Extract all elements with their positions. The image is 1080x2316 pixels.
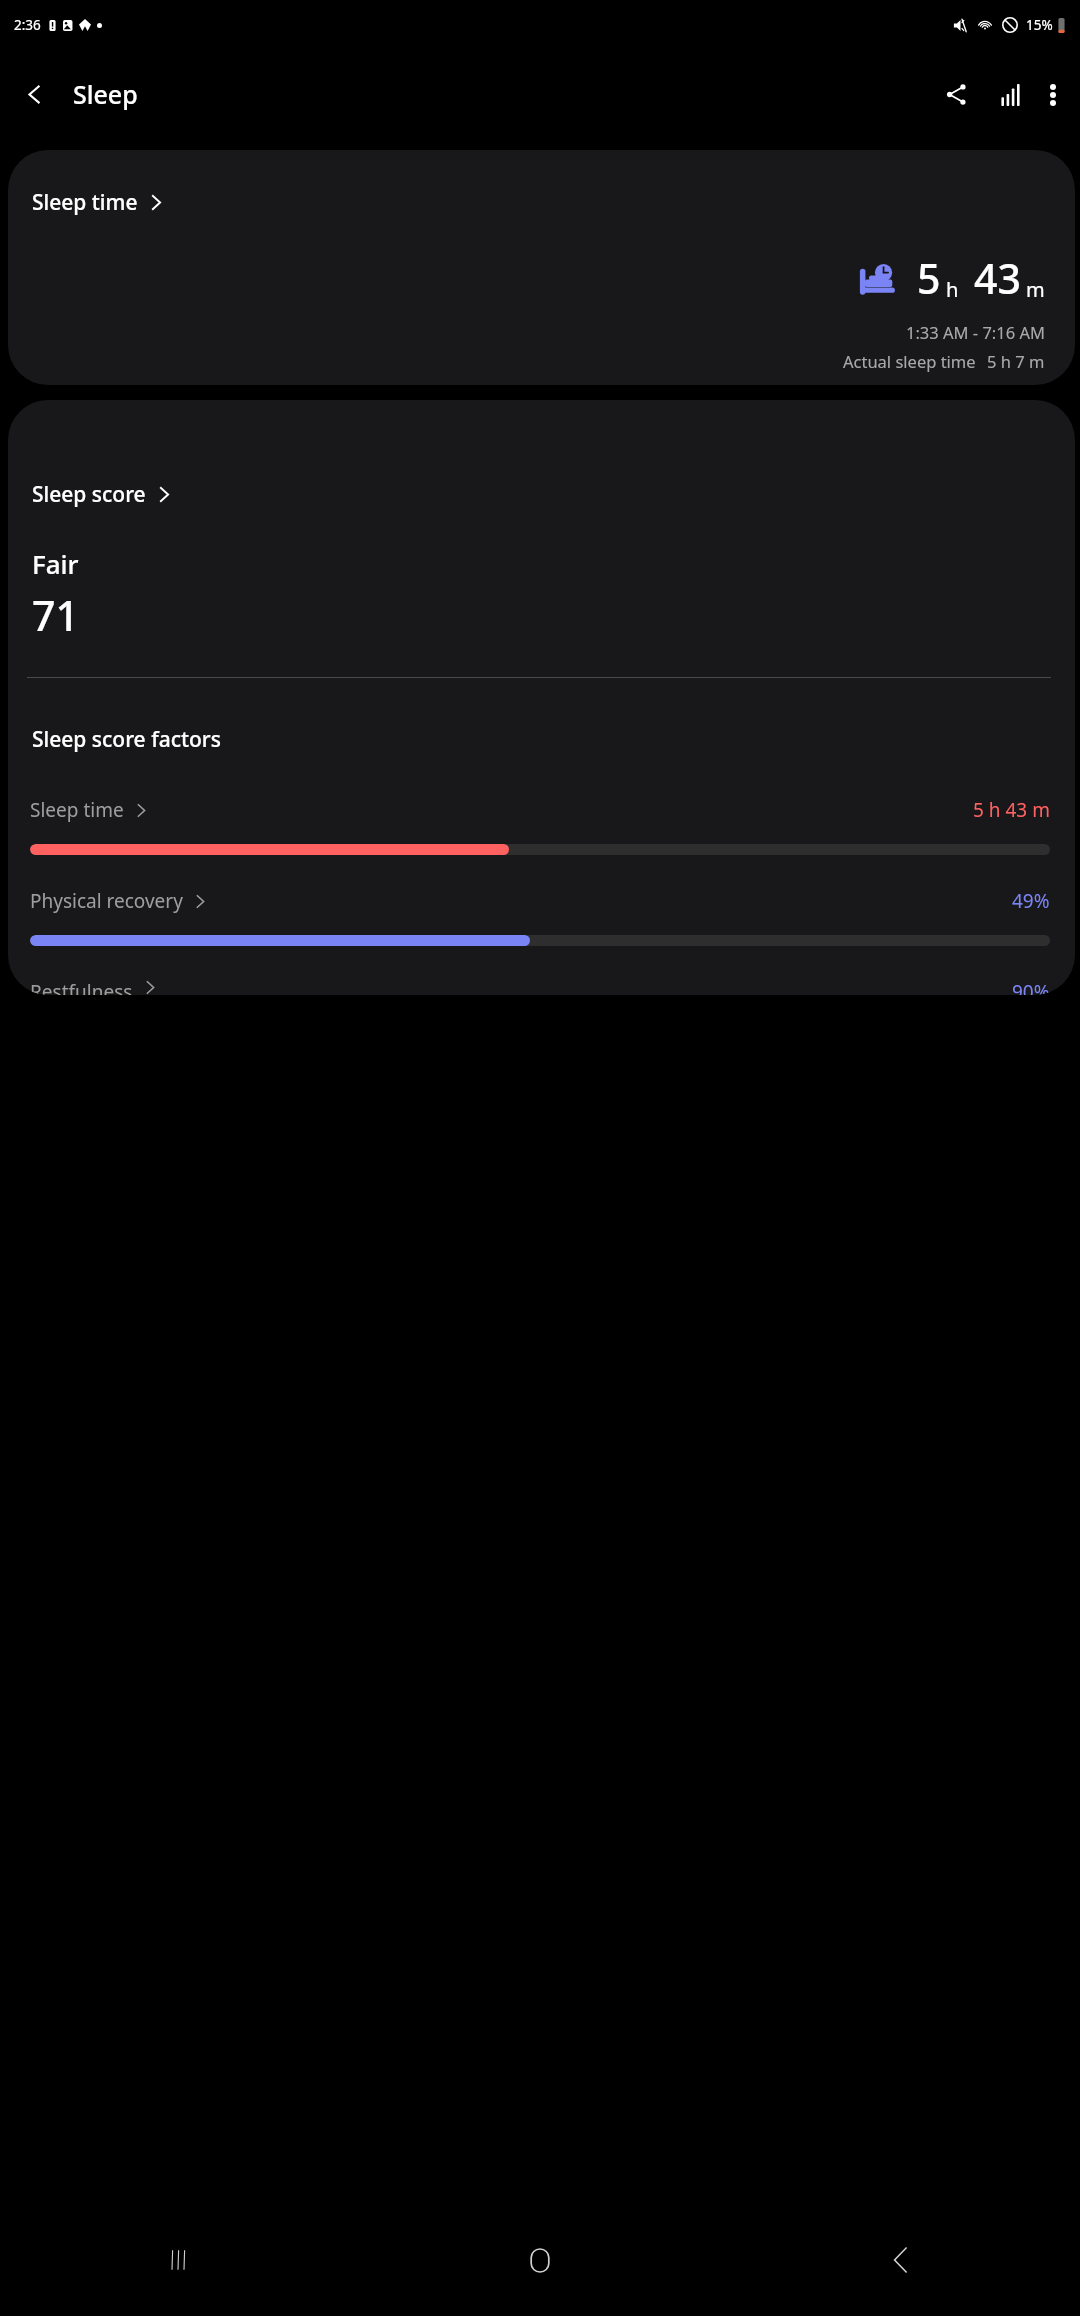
button[interactable]: Sleep time [8,797,1075,855]
staticText: 49% [1012,888,1050,914]
button[interactable]: Physical recovery [8,888,1075,946]
staticText: h [946,276,959,303]
staticText: 90% [1012,979,1050,995]
staticText: 43 [974,250,1021,306]
staticText: 5 h 43 m [973,797,1050,823]
staticText: Sleep score factors [32,725,221,754]
staticText: Restfulness [30,979,133,995]
button[interactable]: Home [360,2204,720,2316]
staticText: Fair [32,546,79,581]
staticText: 1:33 AM - 7:16 AM [906,321,1045,343]
button[interactable]: Sleep time [32,188,164,217]
staticText: Sleep [73,77,138,111]
button[interactable]: Sleep time [8,150,1075,385]
button[interactable]: Back [10,72,59,117]
button[interactable]: Share [935,73,978,116]
staticText: 5 h 7 m [987,350,1045,372]
staticText: Sleep time [32,188,138,217]
staticText: Sleep score [32,480,146,509]
staticText: m [1026,276,1045,303]
button[interactable]: Back [720,2204,1080,2316]
staticText: 71 [32,587,79,643]
staticText: 2:36 [14,16,41,34]
button[interactable]: Recents [0,2204,360,2316]
staticText: Physical recovery [30,888,183,914]
button[interactable]: Chart [990,74,1030,116]
staticText: 15% [1026,16,1053,34]
button[interactable]: Restfulness [8,979,1075,995]
button[interactable]: Sleep score [32,480,172,509]
button[interactable]: More options [1040,74,1066,116]
staticText: 5 [917,250,941,306]
staticText: Sleep time [30,797,124,823]
staticText: Actual sleep time [843,350,976,372]
